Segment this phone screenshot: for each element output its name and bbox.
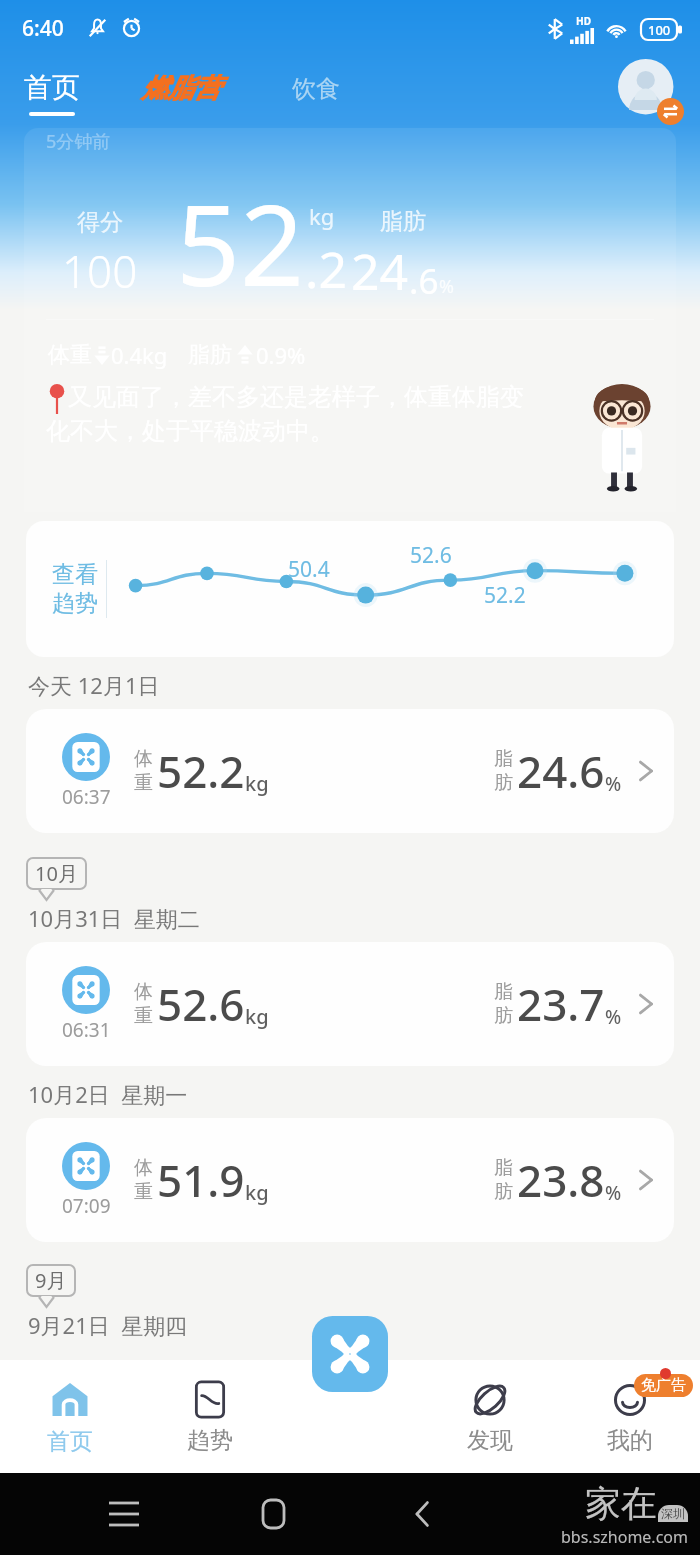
staticText: 23.8 — [517, 1150, 605, 1210]
staticText: % — [605, 771, 622, 797]
staticText: 查看 — [52, 560, 98, 589]
button[interactable]: Switch user — [618, 59, 684, 125]
button[interactable]: Home — [248, 1489, 298, 1539]
staticText: 我的 — [607, 1426, 653, 1455]
staticText: 6:40 — [22, 14, 64, 43]
button[interactable]: Back — [397, 1489, 447, 1539]
staticText: 脂肪 — [188, 341, 232, 369]
staticText: 免广告 — [641, 1376, 686, 1395]
button[interactable]: 06:31 — [26, 942, 674, 1066]
staticText: 首页 — [24, 70, 80, 105]
staticText: 50.4 — [288, 555, 330, 584]
staticText: 家在 — [585, 1481, 657, 1526]
button[interactable]: 07:09 — [26, 1118, 674, 1242]
button[interactable]: Recents — [99, 1489, 149, 1539]
staticText: 100 — [62, 241, 138, 301]
button[interactable]: 趋势 — [140, 1360, 280, 1473]
staticText: 07:09 — [62, 1193, 111, 1219]
staticText: .6 — [409, 257, 439, 305]
staticText: 23.7 — [517, 974, 605, 1034]
staticText: 体 — [134, 1156, 153, 1180]
staticText: 10月 — [35, 860, 78, 887]
staticText: 0.9% — [256, 340, 306, 370]
staticText: % — [605, 1180, 622, 1206]
staticText: 重 — [134, 1004, 153, 1028]
staticText: 又见面了，差不多还是老样子，体重体脂变 — [68, 382, 524, 412]
button[interactable]: 5分钟前 — [24, 128, 676, 512]
button[interactable]: 查看 — [26, 521, 674, 657]
button[interactable]: 我的 — [560, 1360, 700, 1473]
staticText: 脂 — [494, 980, 513, 1004]
staticText: 肪 — [494, 771, 513, 795]
staticText: 24 — [351, 237, 409, 305]
staticText: 52 — [176, 166, 305, 319]
staticText: 燃脂营 — [142, 72, 220, 105]
staticText: 52.6 — [410, 541, 452, 570]
staticText: 趋势 — [187, 1426, 233, 1455]
staticText: 52.2 — [484, 581, 526, 610]
staticText: 饮食 — [292, 74, 340, 104]
staticText: 51.9 — [157, 1150, 245, 1210]
staticText: 0.4kg — [111, 340, 168, 370]
staticText: 10月2日 星期一 — [28, 1079, 188, 1109]
staticText: 重 — [134, 771, 153, 795]
staticText: 10月31日 星期二 — [28, 903, 200, 933]
staticText: 化不大，处于平稳波动中。 — [46, 416, 334, 446]
staticText: 脂 — [494, 1156, 513, 1180]
staticText: 100 — [648, 21, 671, 39]
staticText: kg — [245, 1003, 269, 1030]
button[interactable]: 06:37 — [26, 709, 674, 833]
staticText: 肪 — [494, 1004, 513, 1028]
staticText: 52.6 — [157, 974, 245, 1034]
staticText: kg — [309, 201, 335, 231]
staticText: 脂 — [494, 747, 513, 771]
button[interactable]: 燃脂营 — [142, 72, 220, 105]
staticText: 今天 12月1日 — [28, 670, 160, 700]
staticText: kg — [245, 770, 269, 797]
staticText: 24.6 — [517, 741, 605, 801]
staticText: .2 — [305, 235, 347, 303]
staticText: % — [605, 1004, 622, 1030]
button[interactable]: 发现 — [420, 1360, 560, 1473]
staticText: 06:31 — [62, 1017, 111, 1043]
button[interactable]: 饮食 — [292, 74, 340, 104]
staticText: 52.2 — [157, 741, 245, 801]
staticText: 体 — [134, 980, 153, 1004]
button[interactable]: Weigh in — [312, 1316, 388, 1429]
staticText: 9月21日 星期四 — [28, 1310, 188, 1340]
staticText: 体 — [134, 747, 153, 771]
staticText: 5分钟前 — [46, 129, 111, 154]
staticText: % — [439, 274, 454, 299]
staticText: 肪 — [494, 1180, 513, 1204]
staticText: kg — [245, 1179, 269, 1206]
button[interactable]: 首页 — [24, 70, 80, 116]
staticText: 体重 — [48, 341, 92, 369]
staticText: HD — [576, 14, 591, 28]
staticText: 脂肪 — [380, 207, 426, 236]
staticText: 06:37 — [62, 784, 111, 810]
staticText: 发现 — [467, 1426, 513, 1455]
staticText: 重 — [134, 1180, 153, 1204]
staticText: 首页 — [47, 1427, 93, 1456]
staticText: 深圳 — [661, 1506, 685, 1521]
staticText: bbs.szhome.com — [561, 1526, 688, 1548]
staticText: 得分 — [77, 208, 123, 237]
staticText: 9月 — [35, 1267, 67, 1294]
staticText: 趋势 — [52, 589, 98, 618]
button[interactable]: 首页 — [0, 1360, 140, 1473]
